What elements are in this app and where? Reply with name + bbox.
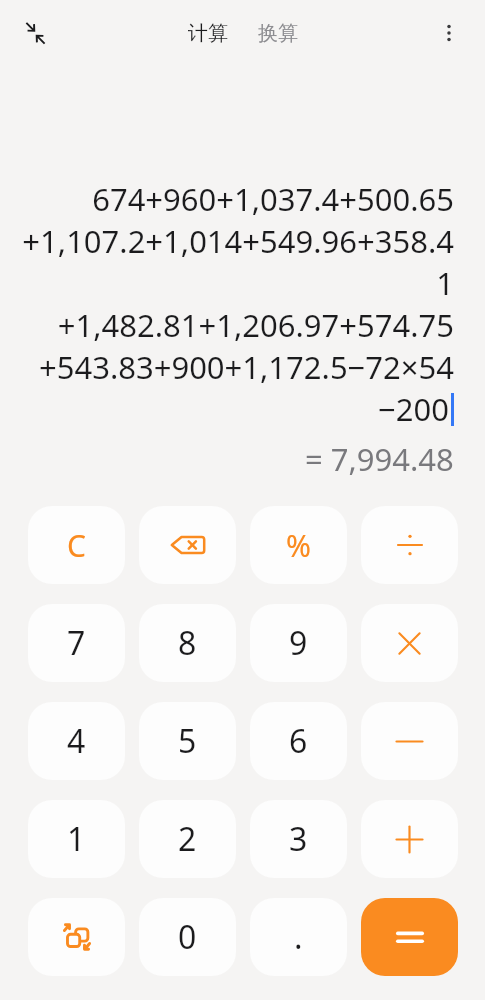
button[interactable]: 1 xyxy=(28,800,125,878)
staticText: 8 xyxy=(178,621,197,665)
button[interactable]: 7 xyxy=(28,604,125,682)
button[interactable]: 4 xyxy=(28,702,125,780)
button[interactable]: % xyxy=(250,506,347,584)
staticText: 2 xyxy=(178,817,197,861)
staticText: 3 xyxy=(289,817,308,861)
staticText: 计算 xyxy=(188,21,228,46)
button[interactable]: More options xyxy=(425,9,473,57)
staticText: C xyxy=(67,525,86,566)
button[interactable]: Minus xyxy=(361,702,458,780)
staticText: 换算 xyxy=(258,21,298,46)
staticText: 5 xyxy=(178,719,197,763)
staticText: 4 xyxy=(67,719,86,763)
staticText: 0 xyxy=(178,915,197,959)
button[interactable]: . xyxy=(250,898,347,976)
staticText: 1 xyxy=(67,817,86,861)
staticText: +1,482.81+1,206.97+574.75 xyxy=(57,304,454,346)
staticText: = 7,994.48 xyxy=(305,438,454,480)
button[interactable]: 2 xyxy=(139,800,236,878)
staticText: −200 xyxy=(378,388,449,430)
button[interactable]: Backspace xyxy=(139,506,236,584)
staticText: +1,107.2+1,014+549.96+358.41 xyxy=(14,220,454,304)
staticText: 6 xyxy=(289,719,308,763)
button[interactable]: 0 xyxy=(139,898,236,976)
staticText: +543.83+900+1,172.5−72×54 xyxy=(38,346,454,388)
button[interactable]: Collapse xyxy=(10,8,60,58)
staticText: 9 xyxy=(289,621,308,665)
button[interactable]: 3 xyxy=(250,800,347,878)
button[interactable]: 8 xyxy=(139,604,236,682)
button[interactable]: Equals xyxy=(361,898,458,976)
staticText: 674+960+1,037.4+500.65 xyxy=(92,178,454,220)
button[interactable]: 换算 xyxy=(250,15,306,52)
button[interactable]: 6 xyxy=(250,702,347,780)
button[interactable]: Convert xyxy=(28,898,125,976)
button[interactable]: Divide xyxy=(361,506,458,584)
button[interactable]: Plus xyxy=(361,800,458,878)
button[interactable]: 9 xyxy=(250,604,347,682)
button[interactable]: 计算 xyxy=(180,15,236,52)
staticText: % xyxy=(286,525,311,566)
staticText: . xyxy=(294,915,303,959)
button[interactable]: C xyxy=(28,506,125,584)
button[interactable]: 5 xyxy=(139,702,236,780)
button[interactable]: Multiply xyxy=(361,604,458,682)
staticText: 7 xyxy=(67,621,86,665)
